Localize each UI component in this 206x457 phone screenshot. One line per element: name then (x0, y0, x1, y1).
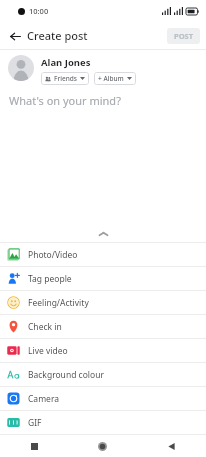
staticText: Check in (28, 321, 62, 333)
button[interactable]: Back (4, 25, 26, 47)
staticText: GIF (28, 417, 42, 429)
staticText: Camera (28, 393, 59, 405)
staticText: Alan Jones (41, 56, 91, 69)
button[interactable]: Background colour (0, 363, 206, 386)
staticText: Photo/Video (28, 249, 78, 261)
button[interactable]: Tag people (0, 267, 206, 290)
staticText: Tag people (28, 273, 72, 285)
button[interactable]: Back (137, 435, 206, 457)
button[interactable]: GIF (0, 411, 206, 434)
staticText: Live video (28, 345, 68, 357)
button[interactable]: Expand options (0, 226, 206, 242)
staticText: POST (174, 31, 194, 41)
staticText: Background colour (28, 369, 104, 381)
button[interactable]: Live video (0, 339, 206, 362)
staticText: 10:00 (29, 6, 49, 16)
staticText: Create post (27, 28, 88, 43)
button[interactable]: Camera (0, 387, 206, 410)
button[interactable]: Check in (0, 315, 206, 338)
button[interactable]: POST (167, 28, 200, 44)
button[interactable]: Feeling/Activity (0, 291, 206, 314)
staticText: What's on your mind? (9, 93, 121, 108)
staticText: Feeling/Activity (28, 297, 89, 309)
button[interactable]: Recents (0, 435, 68, 457)
button[interactable]: + Album (94, 72, 136, 85)
button[interactable]: Photo/Video (0, 243, 206, 266)
staticText: Friends (54, 74, 77, 83)
button[interactable]: Friends (41, 72, 89, 85)
staticText: + Album (98, 74, 124, 83)
button[interactable]: Home (68, 435, 137, 457)
